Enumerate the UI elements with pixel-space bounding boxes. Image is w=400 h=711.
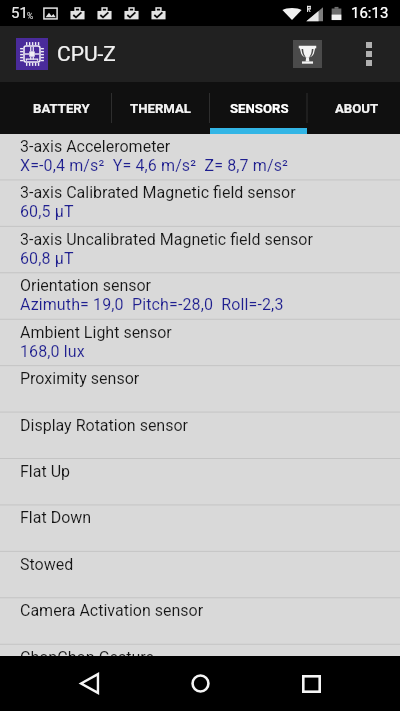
staticText: 168,0 lux <box>20 342 85 361</box>
button[interactable]: Camera Activation sensor <box>0 598 400 644</box>
button[interactable]: Proximity sensor <box>0 366 400 412</box>
button[interactable]: Home <box>156 656 244 711</box>
button[interactable]: Stowed <box>0 552 400 598</box>
staticText: Ambient Light sensor <box>20 323 172 342</box>
staticText: Camera Activation sensor <box>20 601 204 620</box>
staticText: THERMAL <box>130 101 192 116</box>
staticText: 51 <box>11 4 28 22</box>
staticText: BATTERY <box>33 101 90 116</box>
staticText: Proximity sensor <box>20 369 140 388</box>
staticText: 3-axis Uncalibrated Magnetic field senso… <box>20 230 313 249</box>
button[interactable]: ChopChop Gesture <box>0 645 400 691</box>
button[interactable]: Flat Down <box>0 505 400 551</box>
staticText: % <box>27 11 34 21</box>
staticText: 60,8 µT <box>20 249 74 268</box>
button[interactable]: 3-axis Accelerometer <box>0 134 400 180</box>
staticText: Stowed <box>20 555 74 574</box>
staticText: 16:13 <box>351 4 389 22</box>
staticText: 3-axis Calibrated Magnetic field sensor <box>20 183 296 202</box>
button[interactable]: Ambient Light sensor <box>0 320 400 366</box>
button[interactable]: 3-axis Uncalibrated Magnetic field senso… <box>0 227 400 273</box>
staticText: SENSORS <box>230 101 289 116</box>
button[interactable]: THERMAL <box>112 82 210 134</box>
button[interactable]: Back <box>45 656 133 711</box>
staticText: 3-axis Accelerometer <box>20 137 171 156</box>
staticText: Display Rotation sensor <box>20 416 189 435</box>
button[interactable]: Benchmark <box>285 26 330 82</box>
button[interactable]: Display Rotation sensor <box>0 413 400 459</box>
staticText: Flat Up <box>20 462 70 481</box>
button[interactable]: Flat Up <box>0 459 400 505</box>
button[interactable]: More options <box>348 26 390 82</box>
staticText: ABOUT <box>335 101 379 116</box>
staticText: 60,5 µT <box>20 202 74 221</box>
button[interactable]: Recent apps <box>267 656 356 711</box>
staticText: ChopChop Gesture <box>20 648 155 667</box>
staticText: Flat Down <box>20 508 92 527</box>
button[interactable]: Orientation sensor <box>0 273 400 319</box>
staticText: Orientation sensor <box>20 276 152 295</box>
staticText: CPU-Z <box>57 42 116 67</box>
staticText: Azimuth= 19,0 Pitch=-28,0 Roll=-2,3 <box>20 295 284 314</box>
staticText: X=-0,4 m/s² Y= 4,6 m/s² Z= 8,7 m/s² <box>20 156 289 175</box>
button[interactable]: 3-axis Calibrated Magnetic field sensor <box>0 180 400 226</box>
button[interactable]: ABOUT <box>307 82 400 134</box>
button[interactable]: BATTERY <box>11 82 112 134</box>
button[interactable]: SENSORS <box>210 82 308 134</box>
